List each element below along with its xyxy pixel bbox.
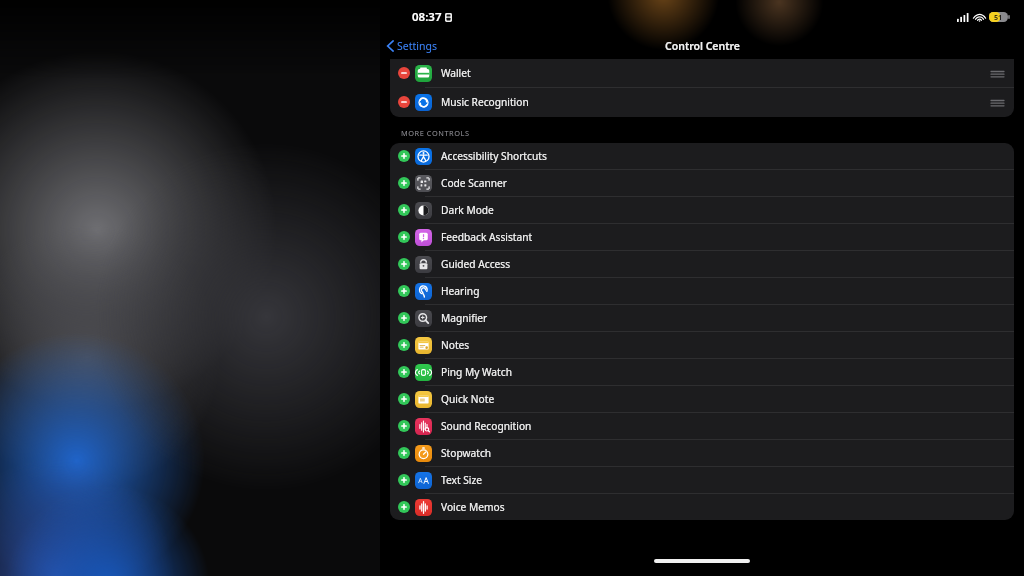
staticText: 51 (994, 12, 1003, 22)
button[interactable]: Remove Music Recognition (398, 96, 410, 108)
button[interactable]: Add Stopwatch (398, 447, 410, 459)
staticText: 08:37 (412, 9, 442, 25)
button[interactable]: Add Code Scanner (398, 177, 410, 189)
staticText: Feedback Assistant (441, 230, 533, 244)
staticText: Quick Note (441, 392, 495, 406)
staticText: Sound Recognition (441, 419, 532, 433)
button[interactable]: Add Feedback Assistant (390, 224, 1014, 250)
button[interactable]: Add Stopwatch (390, 440, 1014, 466)
button[interactable]: Remove Music Recognition (390, 88, 1014, 116)
button[interactable]: Add Guided Access (390, 251, 1014, 277)
button[interactable]: Add Hearing (390, 278, 1014, 304)
button[interactable]: Remove Wallet (398, 67, 410, 79)
staticText: Music Recognition (441, 95, 529, 109)
staticText: Code Scanner (441, 176, 508, 190)
button[interactable]: Add Code Scanner (390, 170, 1014, 196)
button[interactable]: Settings (380, 36, 443, 56)
button[interactable]: Add Accessibility Shortcuts (390, 143, 1014, 169)
staticText: Control Centre (665, 39, 740, 53)
button[interactable]: Add Notes (398, 339, 410, 351)
button[interactable]: Add Text Size (398, 474, 410, 486)
button[interactable]: Reorder Wallet (990, 68, 1005, 79)
button[interactable]: Add Voice Memos (398, 501, 410, 513)
button[interactable]: Add Accessibility Shortcuts (398, 150, 410, 162)
staticText: Ping My Watch (441, 365, 512, 379)
button[interactable]: Add Hearing (398, 285, 410, 297)
staticText: Guided Access (441, 257, 511, 271)
staticText: Voice Memos (441, 500, 505, 514)
button[interactable]: Add Quick Note (390, 386, 1014, 412)
button[interactable]: Add Guided Access (398, 258, 410, 270)
button[interactable]: Add Magnifier (398, 312, 410, 324)
button[interactable]: Add Dark Mode (390, 197, 1014, 223)
button[interactable]: Add Notes (390, 332, 1014, 358)
button[interactable]: Add Quick Note (398, 393, 410, 405)
button[interactable]: Add Voice Memos (390, 494, 1014, 520)
staticText: Hearing (441, 284, 480, 298)
staticText: Dark Mode (441, 203, 494, 217)
button[interactable]: Add Text Size (390, 467, 1014, 493)
button[interactable]: Add Ping My Watch (390, 359, 1014, 385)
staticText: Accessibility Shortcuts (441, 149, 547, 163)
staticText: Magnifier (441, 311, 488, 325)
button[interactable]: Add Magnifier (390, 305, 1014, 331)
staticText: Wallet (441, 66, 471, 80)
staticText: Stopwatch (441, 446, 492, 460)
button[interactable]: Add Feedback Assistant (398, 231, 410, 243)
staticText: Settings (397, 39, 437, 53)
staticText: Notes (441, 338, 470, 352)
button[interactable]: Add Sound Recognition (390, 413, 1014, 439)
button[interactable]: Remove Wallet (390, 59, 1014, 87)
staticText: Text Size (441, 473, 482, 487)
button[interactable]: Add Sound Recognition (398, 420, 410, 432)
button[interactable]: Add Ping My Watch (398, 366, 410, 378)
button[interactable]: Add Dark Mode (398, 204, 410, 216)
staticText: MORE CONTROLS (401, 128, 470, 138)
button[interactable]: Reorder Music Recognition (990, 97, 1005, 108)
